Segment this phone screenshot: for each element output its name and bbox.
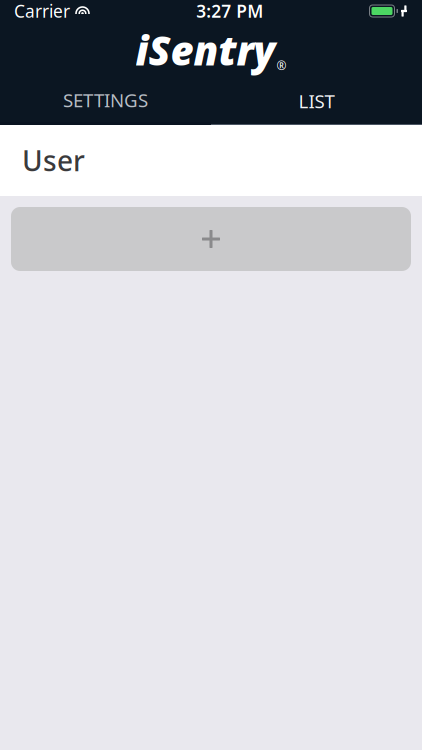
staticText: User	[22, 142, 85, 179]
staticText: iSentry	[135, 23, 275, 76]
button[interactable]: LIST	[211, 78, 422, 125]
staticText: 3:27 PM	[196, 0, 263, 22]
staticText: ®	[276, 58, 286, 73]
button[interactable]: SETTINGS	[0, 78, 211, 125]
button[interactable]: Add user	[11, 207, 411, 271]
staticText: LIST	[298, 89, 334, 113]
staticText: Carrier	[14, 0, 70, 22]
staticText: SETTINGS	[63, 88, 148, 112]
